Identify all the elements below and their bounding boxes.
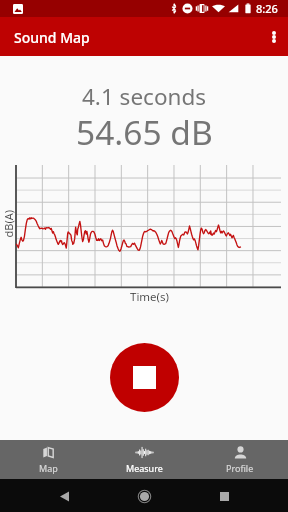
button[interactable]: Map	[0, 440, 96, 479]
staticText: 54.65 dB	[76, 109, 213, 155]
button[interactable]: Measure	[96, 440, 192, 479]
staticText: dB(A)	[0, 209, 15, 237]
staticText: 8:26	[256, 1, 278, 16]
staticText: Map	[39, 462, 58, 474]
staticText: Profile	[226, 462, 254, 474]
staticText: Measure	[126, 462, 163, 474]
staticText: Sound Map	[14, 28, 90, 47]
button[interactable]: Recents	[210, 482, 238, 510]
button[interactable]: Home	[130, 482, 158, 510]
button[interactable]: Back	[50, 482, 78, 510]
button[interactable]: Profile	[192, 440, 288, 479]
button[interactable]: Stop recording	[110, 343, 179, 412]
button[interactable]: More options	[249, 17, 288, 56]
staticText: Time(s)	[130, 289, 170, 305]
staticText: 4.1 seconds	[82, 81, 207, 112]
